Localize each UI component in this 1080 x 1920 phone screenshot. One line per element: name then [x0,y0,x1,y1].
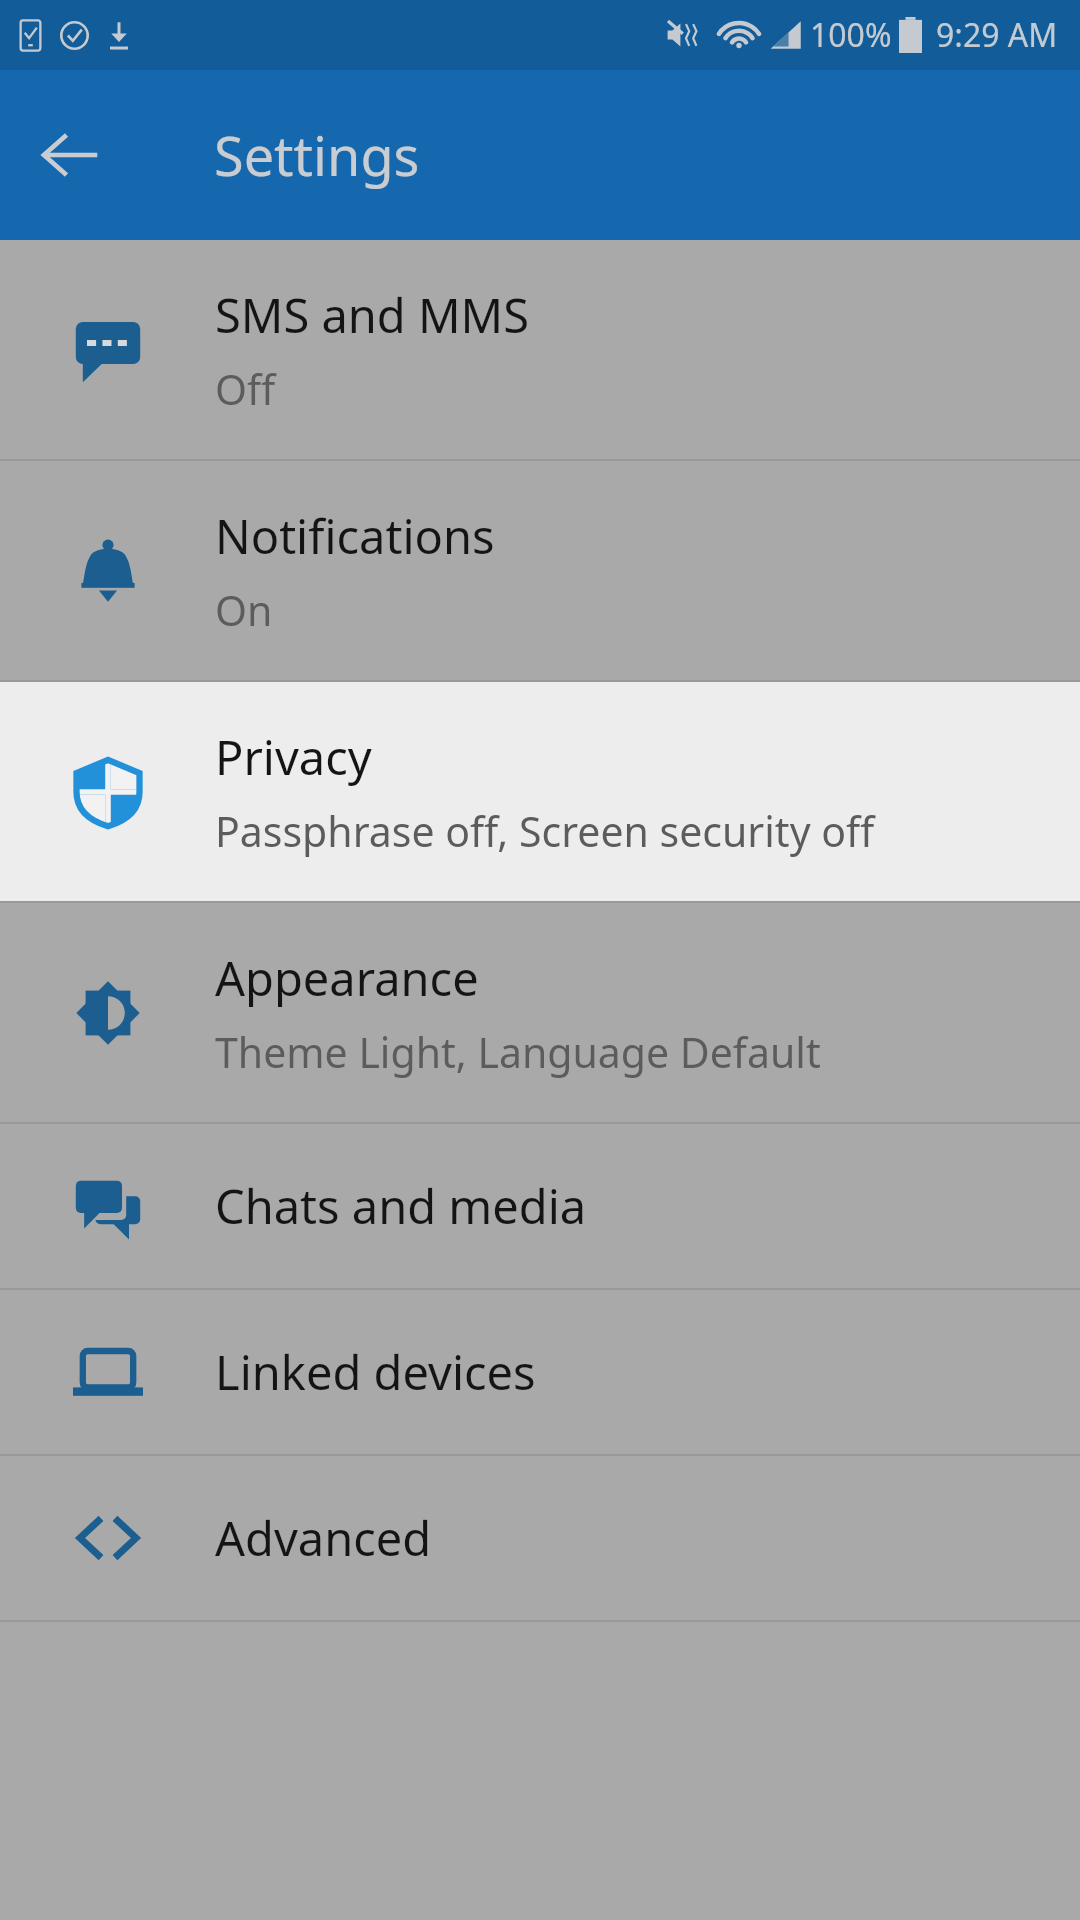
staticText: Theme Light, Language Default [215,1024,821,1080]
button[interactable]: SMS and MMS [0,240,1080,459]
staticText: Linked devices [215,1340,536,1404]
button[interactable]: Back [30,115,110,195]
staticText: Chats and media [215,1174,587,1238]
staticText: Passphrase off, Screen security off [215,803,875,859]
staticText: 9:29 AM [936,13,1058,57]
staticText: Settings [214,118,420,192]
button[interactable]: Advanced [0,1456,1080,1620]
button[interactable]: Notifications [0,461,1080,680]
staticText: Advanced [215,1506,432,1570]
staticText: On [215,582,273,638]
staticText: Off [215,361,276,417]
button[interactable]: Privacy [0,682,1080,901]
button[interactable]: Chats and media [0,1124,1080,1288]
staticText: SMS and MMS [215,283,530,347]
staticText: 100% [810,13,892,57]
staticText: Notifications [215,504,495,568]
staticText: Privacy [215,725,372,789]
staticText: Appearance [215,946,479,1010]
button[interactable]: Linked devices [0,1290,1080,1454]
button[interactable]: Appearance [0,903,1080,1122]
